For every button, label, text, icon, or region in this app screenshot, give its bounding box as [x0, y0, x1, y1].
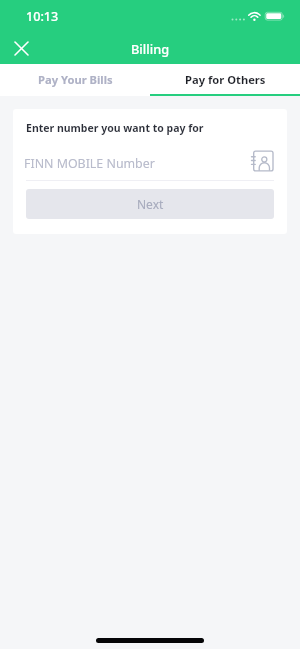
staticText: Next [137, 196, 164, 212]
button[interactable]: Choose from contacts [249, 147, 277, 175]
staticText: Pay for Others [185, 72, 266, 87]
button[interactable]: Pay for Others [150, 64, 300, 96]
other: Status icons [229, 11, 287, 22]
staticText: Pay Your Bills [38, 72, 113, 87]
button[interactable]: Pay Your Bills [0, 64, 150, 96]
staticText: Enter number you want to pay for [26, 121, 204, 135]
staticText: FINN MOBILE Number [24, 155, 155, 172]
staticText: 10:13 [26, 8, 59, 25]
button[interactable]: Next [26, 189, 274, 219]
button[interactable]: Close [7, 34, 35, 62]
staticText: Billing [131, 40, 170, 57]
